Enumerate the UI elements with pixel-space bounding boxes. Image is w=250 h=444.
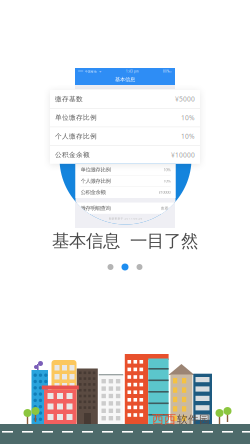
- staticText: 单位缴存比例: [55, 113, 97, 122]
- staticText: ¥10000: [158, 190, 170, 195]
- staticText: 基本信息: [115, 76, 135, 83]
- staticText: ¥10000: [158, 125, 170, 130]
- staticText: 数据更新于 2017-08-24: [108, 217, 142, 220]
- staticText: 基本信息 一目了然: [52, 230, 198, 252]
- staticText: 10%: [163, 178, 170, 184]
- staticText: 80%▭: [163, 70, 172, 73]
- staticText: 软件园: [177, 413, 210, 426]
- staticText: 个人缴存比例: [80, 113, 110, 120]
- staticText: ¥5000: [175, 95, 195, 103]
- staticText: 单位缴存比例: [80, 166, 110, 173]
- staticText: 单位缴存比例: [80, 102, 110, 109]
- button[interactable]: 个人缴存比例: [50, 127, 200, 145]
- staticText: 西西: [152, 412, 176, 427]
- staticText: ••••• 中国移动 ᯤ: [78, 70, 101, 73]
- staticText: 公积金余额: [55, 151, 90, 159]
- staticText: 查看 ›: [160, 205, 170, 211]
- staticText: 10%: [163, 167, 170, 172]
- staticText: 缴存基数: [55, 95, 83, 103]
- button[interactable]: 基本信息 一目了然: [0, 230, 250, 252]
- staticText: 个人缴存比例: [80, 178, 110, 184]
- staticText: 缴存明细查询: [80, 139, 110, 146]
- staticText: ¥10000: [171, 150, 195, 159]
- button[interactable]: 单位缴存比例: [50, 109, 200, 127]
- staticText: 10%: [181, 132, 195, 141]
- staticText: 公积金余额: [80, 189, 105, 196]
- staticText: 缴存明细查询: [80, 205, 110, 211]
- staticText: 个人缴存比例: [55, 132, 97, 140]
- staticText: 缴存基数: [80, 91, 100, 98]
- button[interactable]: 公积金余额: [50, 146, 200, 164]
- staticText: 1:43 pm: [126, 70, 138, 73]
- staticText: 10%: [181, 113, 195, 122]
- button[interactable]: 缴存基数: [50, 90, 200, 108]
